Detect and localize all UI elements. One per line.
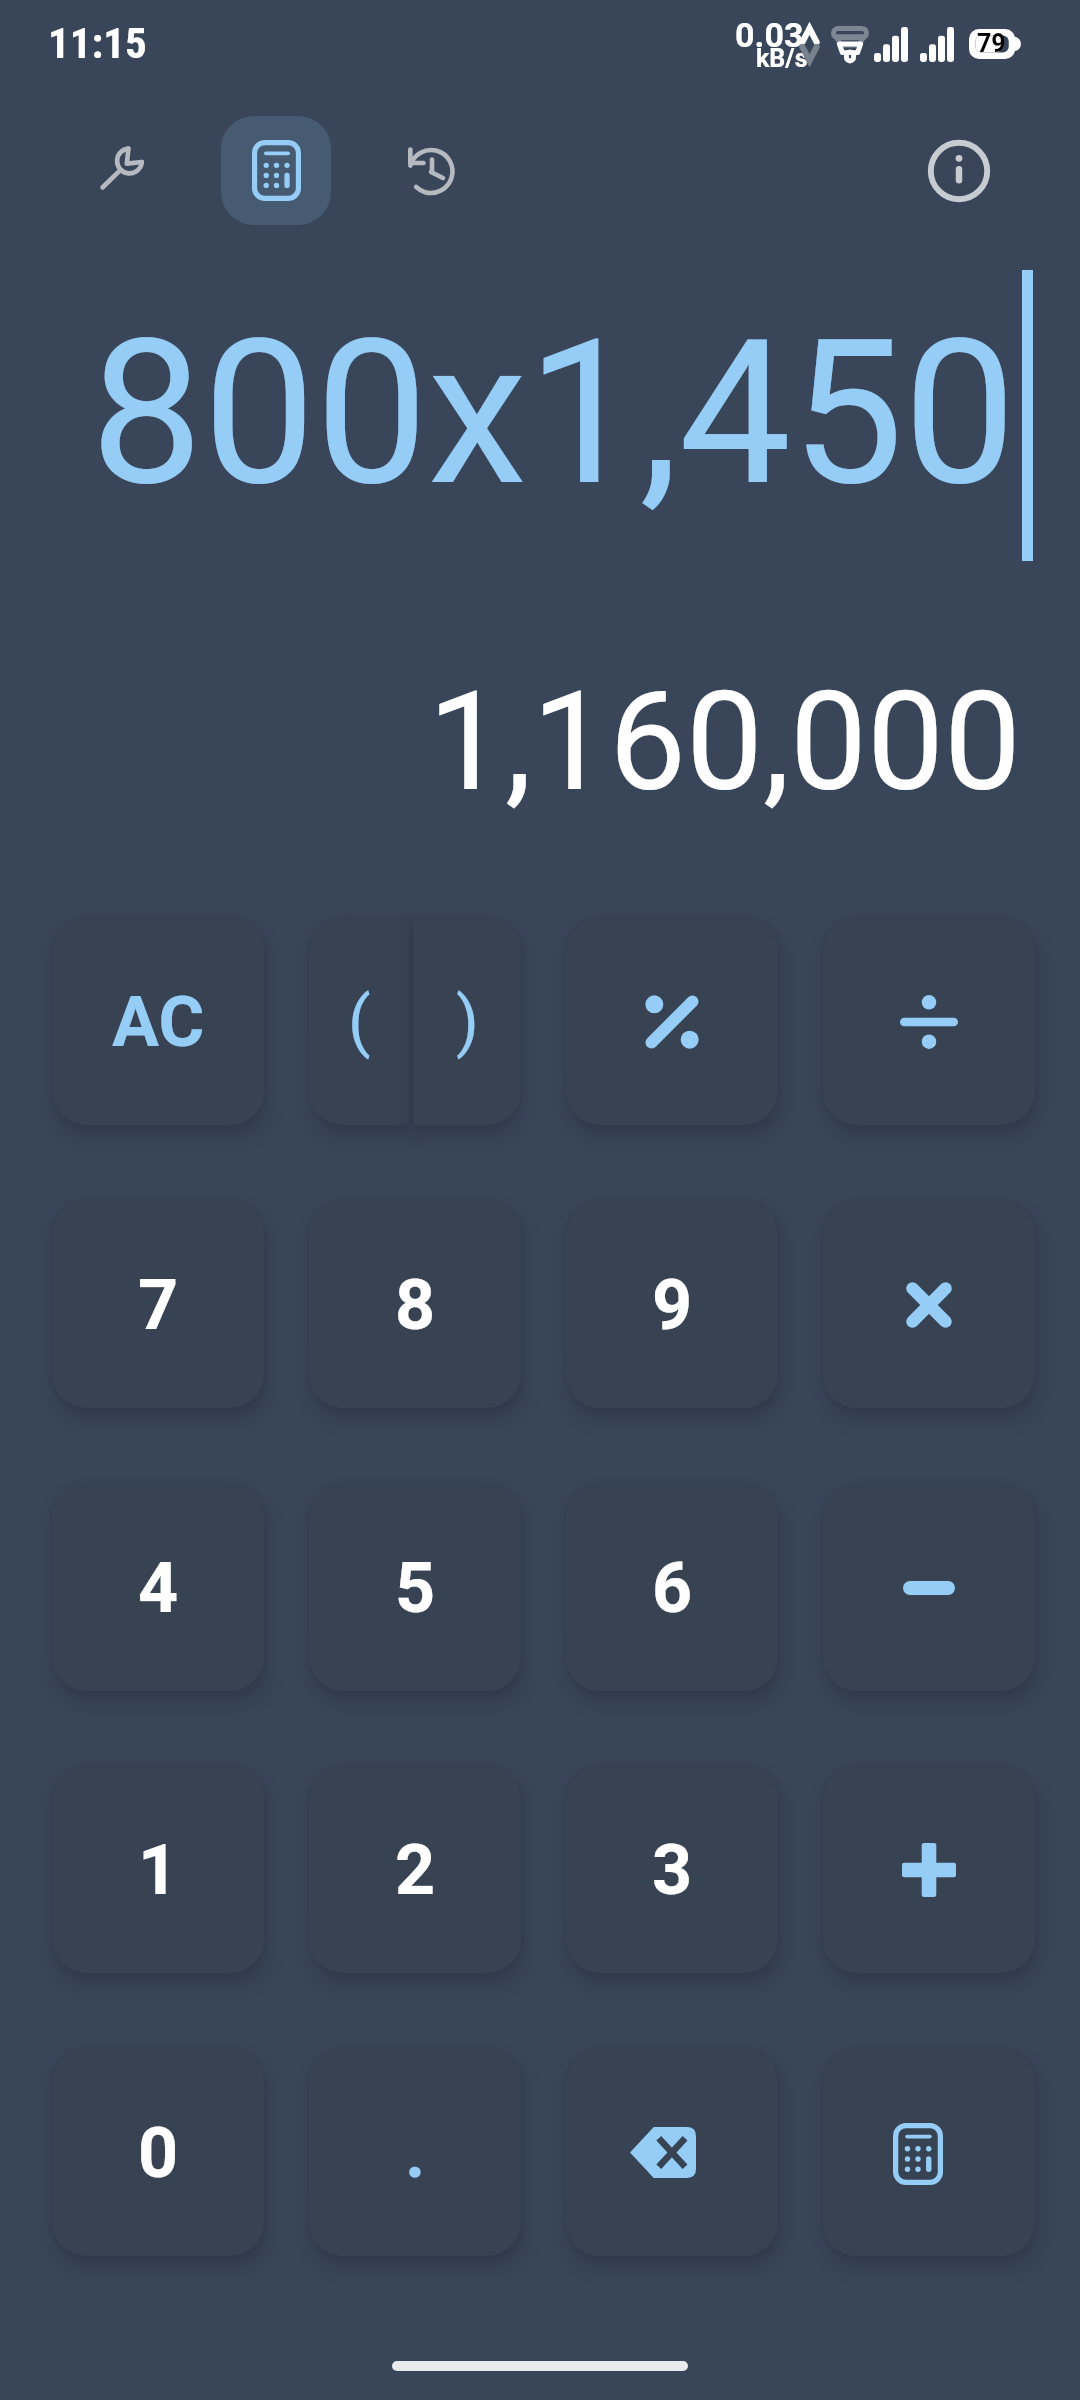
staticText: )	[456, 983, 479, 1060]
button[interactable]: 9	[566, 1201, 778, 1408]
staticText: 11:15	[48, 18, 147, 68]
staticText: 0	[138, 2112, 179, 2194]
button[interactable]: 4	[52, 1484, 264, 1691]
button[interactable]: Multiply	[823, 1201, 1035, 1408]
button[interactable]: Info	[909, 121, 1009, 221]
button[interactable]: History	[382, 122, 482, 222]
staticText: 1	[138, 1829, 179, 1911]
button[interactable]: Plus	[823, 1766, 1035, 1973]
staticText: (	[348, 983, 371, 1060]
button[interactable]: (	[309, 918, 410, 1125]
staticText: 800x1,450	[0, 296, 1016, 2400]
button[interactable]: .	[309, 2049, 521, 2256]
staticText: 6	[652, 1547, 693, 1629]
staticText: AC	[112, 981, 205, 1063]
staticText: 0.03	[735, 15, 804, 55]
button[interactable]: 8	[309, 1201, 521, 1408]
button[interactable]: 6	[566, 1484, 778, 1691]
staticText: 79	[977, 29, 1006, 58]
staticText: 1,160,000	[0, 662, 1021, 2400]
staticText: 8	[395, 1264, 436, 1346]
button[interactable]: 3	[566, 1766, 778, 1973]
button[interactable]: Divide	[823, 918, 1035, 1125]
staticText: 5	[395, 1547, 436, 1629]
button[interactable]: Unit converter	[73, 117, 173, 217]
button[interactable]: 0	[52, 2049, 264, 2256]
button[interactable]: Minus	[823, 1484, 1035, 1691]
staticText: 7	[138, 1264, 179, 1346]
button[interactable]: Backspace	[566, 2049, 778, 2256]
button[interactable]: 7	[52, 1201, 264, 1408]
staticText: 2	[395, 1829, 436, 1911]
button[interactable]: 2	[309, 1766, 521, 1973]
staticText: kB/s	[756, 44, 808, 73]
button[interactable]: 1	[52, 1766, 264, 1973]
staticText: 3	[652, 1829, 693, 1911]
button[interactable]: Percent	[566, 918, 778, 1125]
button[interactable]: Equals	[823, 2049, 1035, 2256]
button[interactable]: Calculator	[221, 116, 331, 225]
button[interactable]: )	[413, 918, 521, 1125]
button[interactable]: AC	[52, 918, 264, 1125]
button[interactable]: 5	[309, 1484, 521, 1691]
staticText: .	[405, 2112, 426, 2194]
staticText: 9	[652, 1264, 693, 1346]
staticText: 4	[138, 1547, 179, 1629]
